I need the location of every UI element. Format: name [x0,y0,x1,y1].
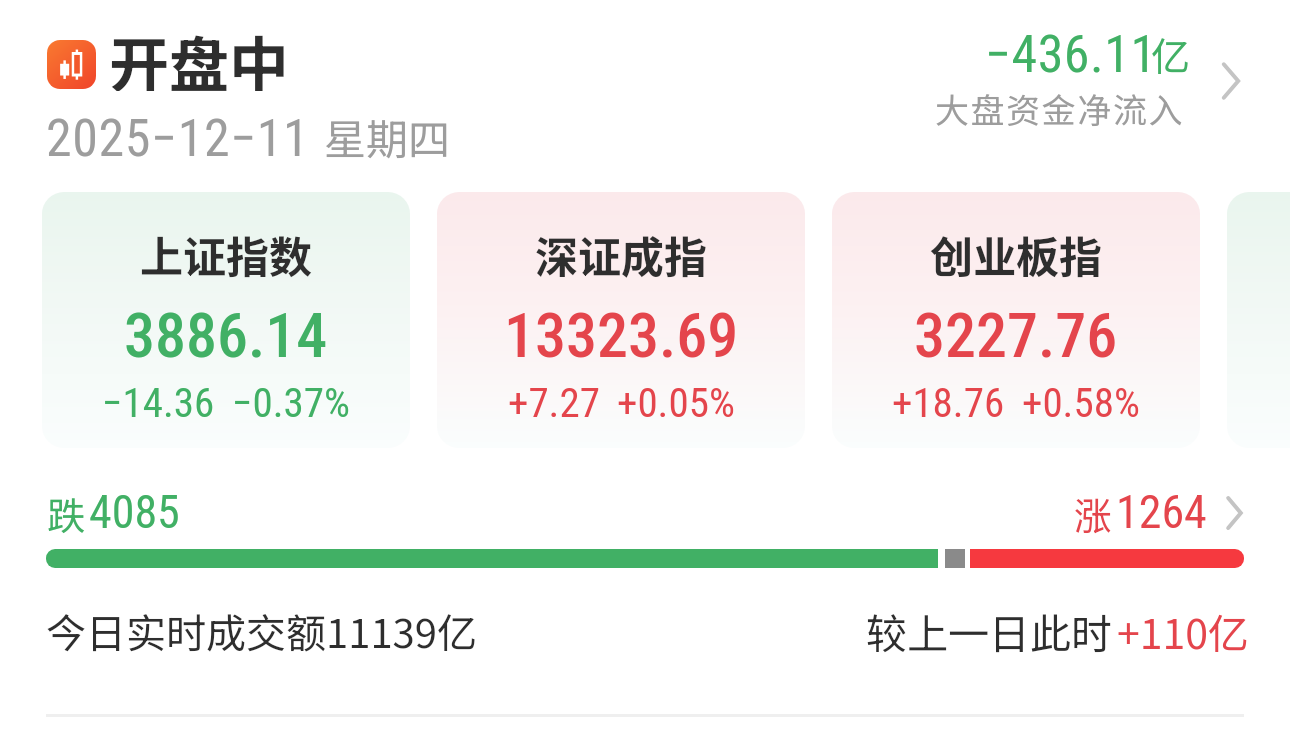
staticText: 2025−12−11 [46,108,310,169]
staticText: −14.36 [102,379,215,427]
button[interactable]: 深证成指 [437,192,805,448]
staticText: 13323.69 [504,299,739,372]
button[interactable]: 开盘中 [104,26,304,100]
staticText: 开盘中 [109,17,289,91]
staticText: 1264 [1116,485,1207,539]
button[interactable]: 上证指数 [42,192,410,448]
staticText: +0.05% [617,379,735,427]
button[interactable] [1227,192,1290,448]
staticText: 深证成指 [535,223,707,285]
staticText: 星期四 [324,106,451,167]
button[interactable]: Market open [47,40,96,89]
staticText: 4085 [89,485,180,539]
staticText: 大盘资金净流入 [935,84,1185,133]
staticText: 亿 [1151,26,1191,82]
staticText: +18.76 [892,379,1005,427]
button[interactable]: −436.11 [930,24,1246,142]
button[interactable]: 跌 [44,482,1246,574]
staticText: +7.27 [508,379,600,427]
staticText: 3227.76 [914,299,1118,372]
staticText: 跌 [47,486,86,541]
button[interactable]: 2025−12−11 [42,102,433,164]
staticText: −436.11 [985,24,1157,85]
button[interactable]: 今日实时成交额11139亿 [44,594,1246,662]
staticText: −0.37% [232,379,350,427]
staticText: 涨 [1074,486,1113,541]
staticText: 上证指数 [140,223,312,285]
staticText: +110亿 [1117,601,1250,660]
staticText: 较上一日此时 [866,601,1112,660]
staticText: 3886.14 [124,299,328,372]
other: Capital flow detail [1219,62,1243,100]
staticText: 创业板指 [930,223,1102,285]
staticText: 今日实时成交额11139亿 [46,602,477,660]
staticText: +0.58% [1022,379,1140,427]
button[interactable]: 创业板指 [832,192,1200,448]
